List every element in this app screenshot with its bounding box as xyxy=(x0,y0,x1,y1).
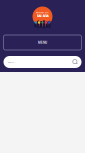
staticText: BALADA xyxy=(36,14,48,18)
staticText: PONTO DA xyxy=(36,11,49,14)
staticText: Search... xyxy=(7,60,16,64)
staticText: MENU xyxy=(38,40,47,44)
button[interactable]: Search... xyxy=(3,56,81,68)
button[interactable]: MENU xyxy=(3,35,81,50)
